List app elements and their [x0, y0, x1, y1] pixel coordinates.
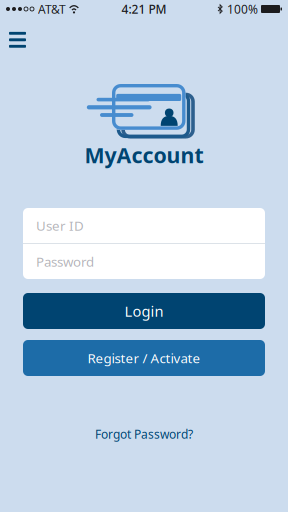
staticText: Register / Activate — [87, 349, 200, 367]
button[interactable]: Register / Activate — [23, 340, 265, 376]
staticText: Forgot Password? — [95, 426, 193, 442]
staticText: Login — [124, 301, 163, 321]
button[interactable]: Login — [23, 293, 265, 329]
button[interactable]: Forgot Password? — [84, 423, 204, 445]
staticText: MyAccount — [84, 141, 203, 169]
staticText: AT&T — [38, 1, 66, 17]
staticText: Password — [36, 253, 94, 270]
staticText: 100% — [227, 1, 258, 17]
button[interactable]: Menu — [0, 24, 34, 56]
staticText: 4:21 PM — [121, 1, 166, 17]
staticText: User ID — [36, 217, 84, 234]
